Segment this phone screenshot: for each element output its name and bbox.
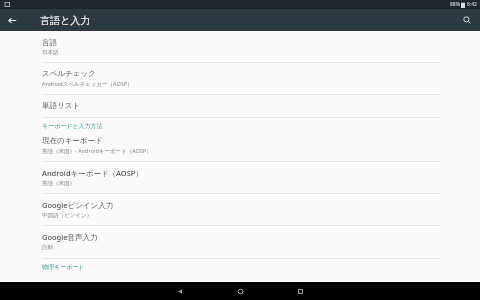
staticText: 6:42	[467, 1, 477, 8]
staticText: Google音声入力	[42, 232, 98, 242]
staticText: 88%	[450, 1, 460, 8]
staticText: 単語リスト	[42, 101, 81, 110]
staticText: 現在のキーボード	[42, 136, 103, 145]
staticText: 物理キーボード	[42, 263, 85, 271]
button[interactable]: Recent apps	[270, 282, 330, 300]
staticText: スペルチェック	[42, 69, 96, 78]
staticText: Androidキーボード（AOSP）	[42, 168, 143, 178]
staticText: 英語（米国）	[42, 180, 75, 187]
button[interactable]: 言語	[0, 34, 480, 60]
staticText: 英語（米国）- Androidキーボード（AOSP）	[42, 147, 152, 155]
button[interactable]: 現在のキーボード	[0, 132, 480, 159]
staticText: キーボードと入力方法	[42, 122, 103, 130]
staticText: Googleピンイン入力	[42, 200, 114, 210]
button[interactable]: Googleピンイン入力	[0, 196, 480, 223]
staticText: 自動	[42, 244, 53, 251]
button[interactable]: Search	[459, 12, 475, 28]
button[interactable]: Back	[150, 282, 210, 300]
button[interactable]: Back	[4, 12, 20, 28]
button[interactable]: Google音声入力	[0, 228, 480, 255]
staticText: Androidスペルチェッカー（AOSP）	[42, 80, 133, 88]
button[interactable]: 単語リスト	[0, 97, 480, 114]
button[interactable]: Androidキーボード（AOSP）	[0, 164, 480, 191]
staticText: 中国語（ピンイン）	[42, 212, 93, 219]
button[interactable]: スペルチェック	[0, 65, 480, 92]
staticText: 言語と入力	[40, 14, 91, 27]
staticText: 言語	[42, 38, 57, 47]
staticText: 日本語	[42, 49, 59, 56]
button[interactable]: Home	[210, 282, 270, 300]
